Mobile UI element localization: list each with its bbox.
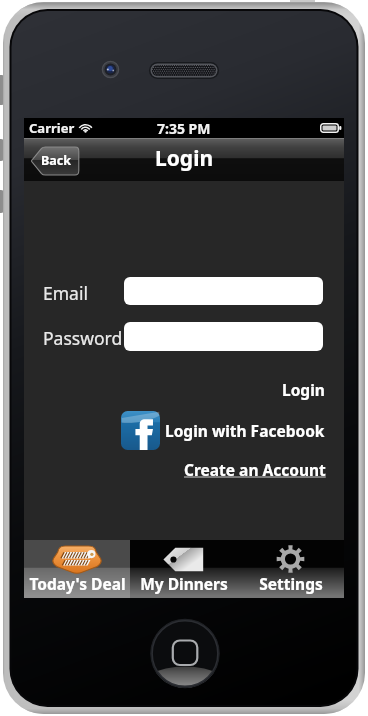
staticText: Settings — [259, 573, 323, 594]
staticText: Login with Facebook — [165, 420, 325, 441]
staticText: 7:35 PM — [157, 119, 211, 138]
button[interactable]: Create an Account — [174, 458, 326, 480]
staticText: Login — [155, 144, 214, 173]
staticText: Create an Account — [184, 459, 326, 480]
staticText: Back — [41, 152, 72, 169]
other: Battery full — [320, 123, 341, 133]
staticText: My Dinners — [140, 573, 228, 594]
staticText: Email — [43, 281, 88, 305]
button[interactable]: Settings — [237, 540, 344, 598]
staticText: Login — [282, 379, 325, 400]
button[interactable]: Login — [214, 378, 325, 400]
button[interactable]: Password field — [124, 322, 323, 351]
staticText: Today's Deal — [29, 573, 126, 594]
staticText: Password — [43, 326, 123, 350]
button[interactable]: Back — [30, 146, 80, 176]
button[interactable]: Email field — [124, 277, 323, 305]
other: Wi-Fi signal — [77, 122, 93, 133]
button[interactable]: Login with Facebook — [121, 409, 325, 451]
staticText: Carrier — [29, 119, 75, 137]
button[interactable]: Today's Deal — [24, 540, 130, 598]
button[interactable]: My Dinners — [130, 540, 237, 598]
